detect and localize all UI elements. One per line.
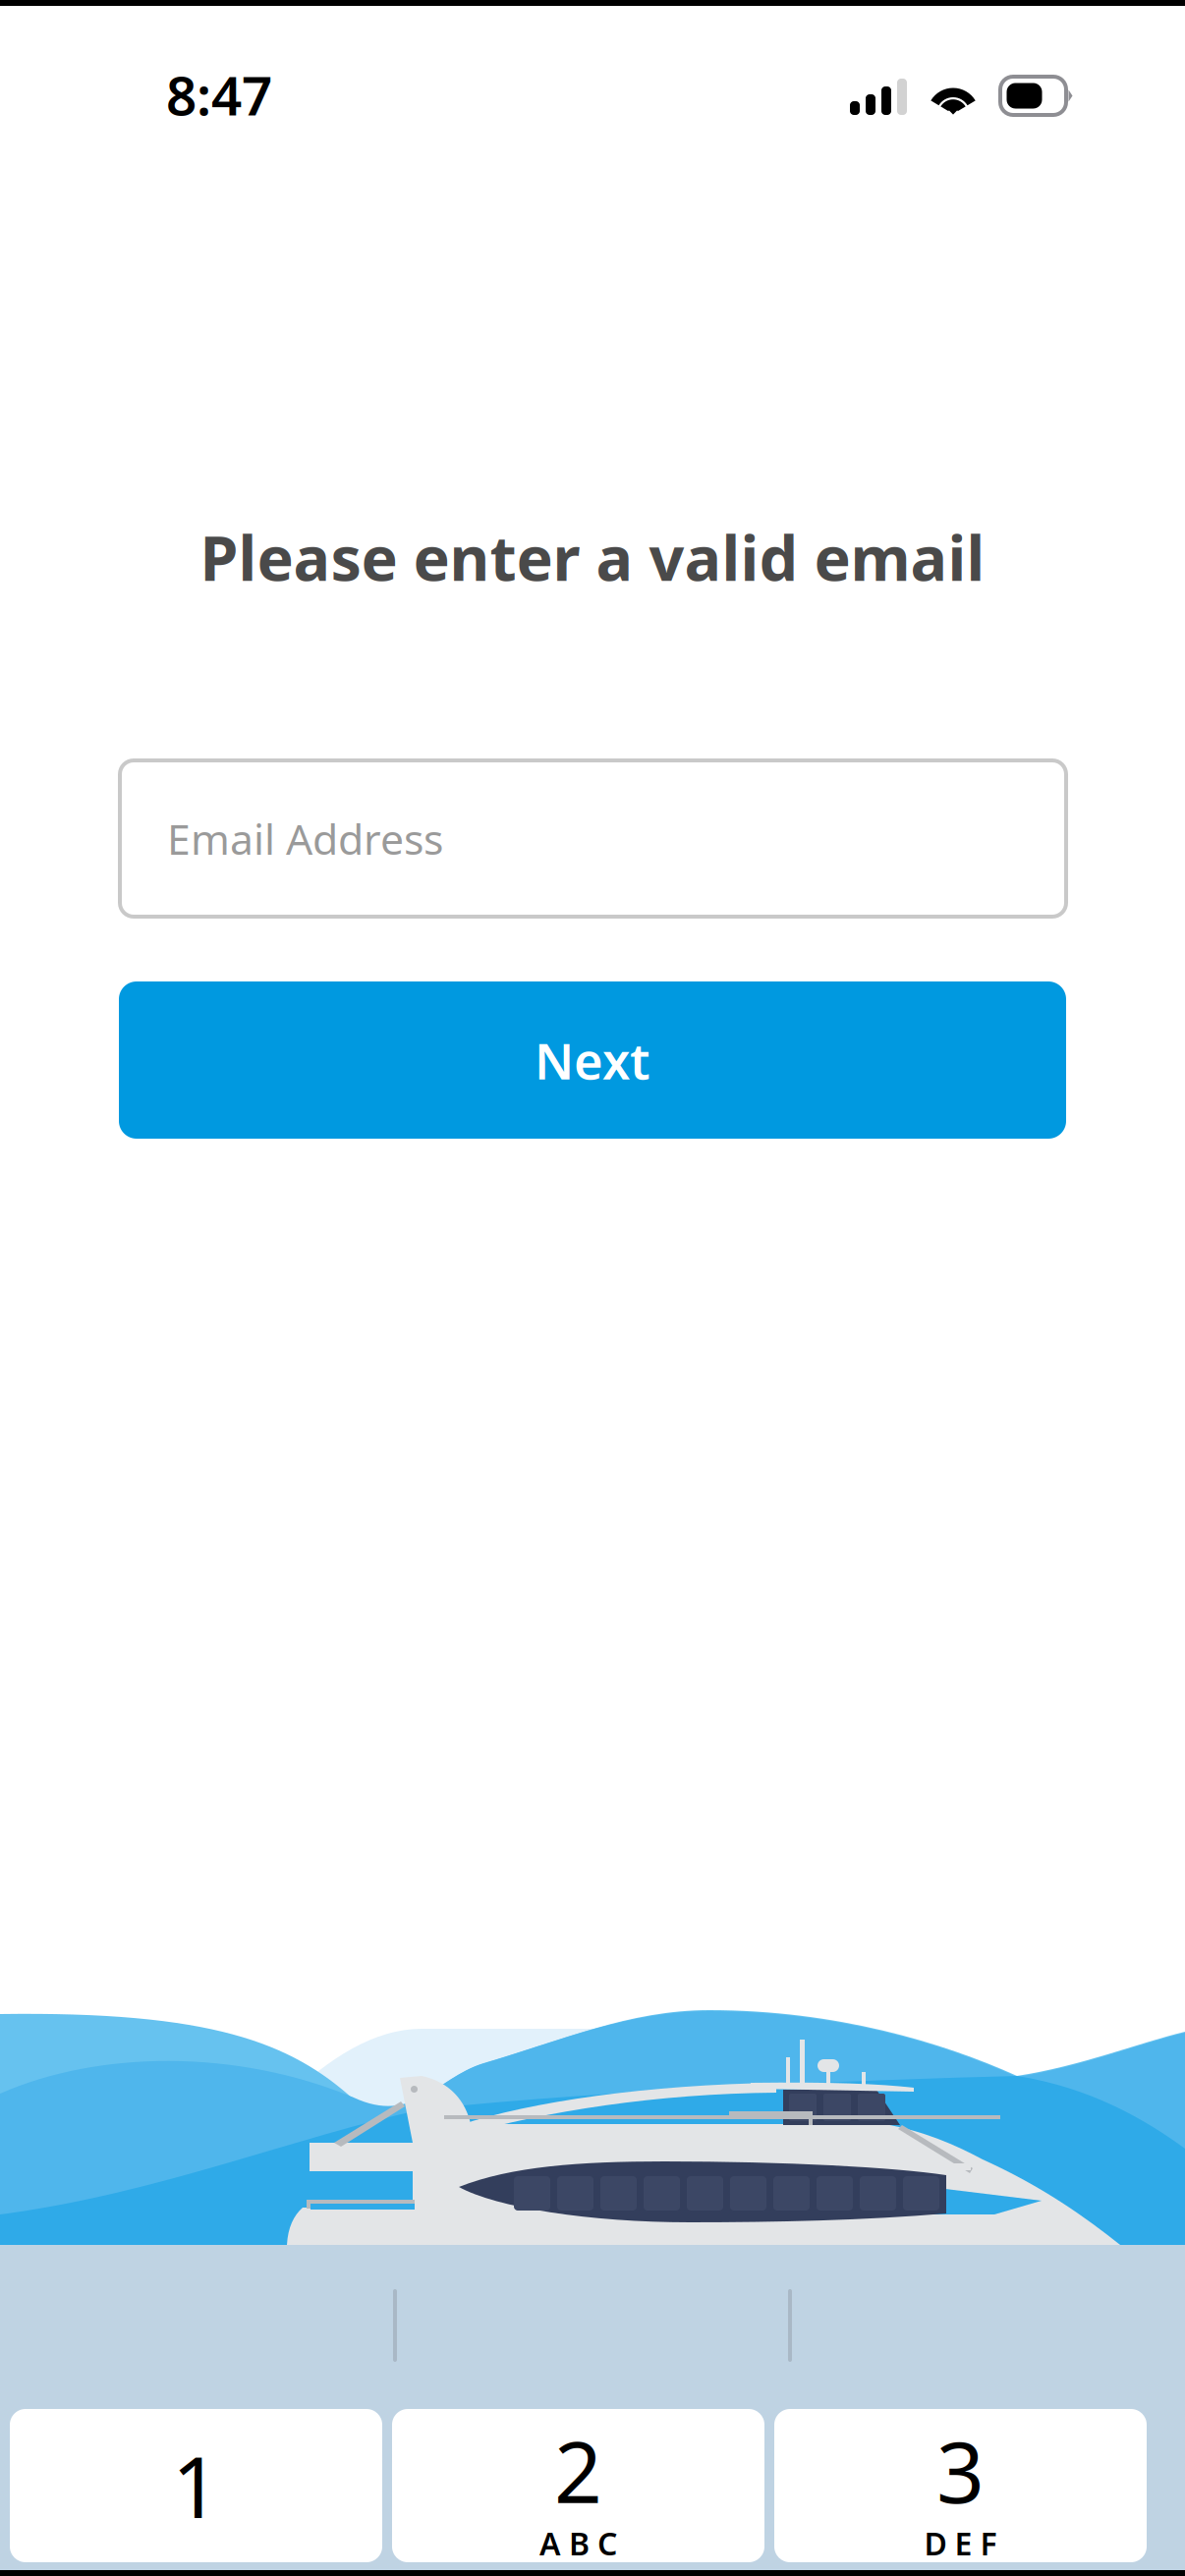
staticText: Email Address [167, 811, 443, 866]
staticText: 2 [554, 2415, 602, 2526]
staticText: 8:47 [166, 59, 272, 130]
staticText: 1 [172, 2430, 220, 2541]
staticText: Next [535, 1027, 650, 1093]
staticText: Please enter a valid email [200, 516, 985, 598]
button[interactable]: 3 [774, 2409, 1147, 2562]
button[interactable]: Email Address [120, 760, 1066, 917]
button[interactable]: Next [119, 981, 1066, 1139]
button[interactable]: 1 [10, 2409, 382, 2562]
button[interactable]: 2 [392, 2409, 764, 2562]
staticText: A B C [539, 2522, 617, 2564]
staticText: 3 [936, 2415, 985, 2526]
staticText: D E F [924, 2522, 997, 2564]
